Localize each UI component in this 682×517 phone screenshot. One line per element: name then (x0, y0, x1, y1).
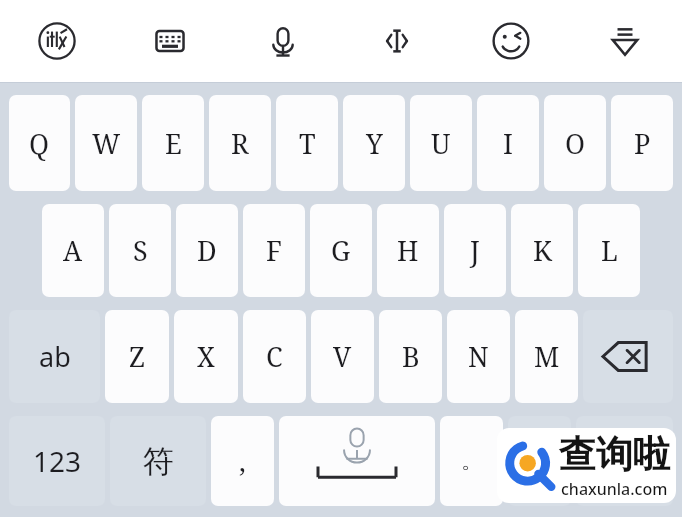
staticText: 符 (143, 442, 174, 481)
staticText: D (197, 232, 217, 269)
button[interactable]: ab (9, 310, 100, 403)
button[interactable]: R (209, 95, 271, 191)
staticText: U (431, 125, 451, 162)
staticText: N (468, 338, 489, 375)
button[interactable]: A (42, 204, 104, 297)
button[interactable]: I (477, 95, 539, 191)
staticText: Q (29, 125, 50, 162)
button[interactable]: ？ (508, 416, 571, 506)
button[interactable]: N (447, 310, 510, 403)
staticText: Y (366, 125, 383, 162)
button[interactable]: 。 (440, 416, 503, 506)
staticText: Z (129, 338, 145, 375)
staticText: K (533, 232, 552, 269)
staticText: B (402, 338, 420, 375)
button[interactable]: , (211, 416, 274, 506)
staticText: J (470, 232, 480, 269)
button[interactable]: S (109, 204, 171, 297)
button[interactable]: F (243, 204, 305, 297)
button[interactable]: Voice input (226, 0, 340, 82)
button[interactable]: H (377, 204, 439, 297)
staticText: A (63, 232, 83, 269)
button[interactable]: Y (343, 95, 405, 191)
button[interactable]: K (511, 204, 573, 297)
button[interactable]: M (515, 310, 578, 403)
button[interactable]: P (611, 95, 673, 191)
button[interactable]: T (276, 95, 338, 191)
staticText: H (397, 232, 419, 269)
button[interactable]: Space (279, 416, 435, 506)
staticText: 123 (33, 442, 82, 480)
button[interactable]: Hide keyboard (568, 0, 682, 82)
button[interactable]: J (444, 204, 506, 297)
button[interactable]: Move cursor (340, 0, 454, 82)
staticText: M (534, 338, 560, 375)
staticText: chaxunla.com (561, 478, 668, 500)
button[interactable]: X (174, 310, 238, 403)
staticText: O (565, 125, 586, 162)
staticText: G (331, 232, 351, 269)
button[interactable]: O (544, 95, 606, 191)
staticText: 。 (461, 447, 483, 475)
button[interactable]: iFlytek input method (0, 0, 113, 82)
button[interactable]: 123 (9, 416, 105, 506)
button[interactable]: D (176, 204, 238, 297)
staticText: 查询啦 (559, 431, 670, 478)
staticText: R (231, 125, 249, 162)
button[interactable]: V (311, 310, 374, 403)
button[interactable]: 符 (110, 416, 206, 506)
staticText: S (133, 232, 148, 269)
button[interactable]: L (578, 204, 640, 297)
staticText: P (634, 125, 651, 162)
button[interactable]: B (379, 310, 442, 403)
button[interactable]: Backspace (583, 310, 673, 403)
button[interactable]: G (310, 204, 372, 297)
button[interactable]: U (410, 95, 472, 191)
button[interactable]: Z (105, 310, 169, 403)
staticText: I (503, 125, 513, 162)
button[interactable]: C (243, 310, 306, 403)
staticText: W (92, 125, 121, 162)
staticText: C (266, 338, 283, 375)
button[interactable]: Emoji (454, 0, 568, 82)
button[interactable]: E (142, 95, 204, 191)
staticText: , (239, 443, 246, 480)
staticText: X (197, 338, 215, 375)
staticText: ab (39, 338, 71, 375)
staticText: T (299, 125, 316, 162)
staticText: V (333, 338, 352, 375)
staticText: E (165, 125, 182, 162)
staticText: F (266, 232, 282, 269)
staticText: L (601, 232, 618, 269)
button[interactable]: Enter (576, 416, 673, 506)
button[interactable]: W (75, 95, 137, 191)
staticText: ？ (528, 446, 552, 476)
button[interactable]: Switch keyboard layout (113, 0, 226, 82)
button[interactable]: Q (9, 95, 70, 191)
